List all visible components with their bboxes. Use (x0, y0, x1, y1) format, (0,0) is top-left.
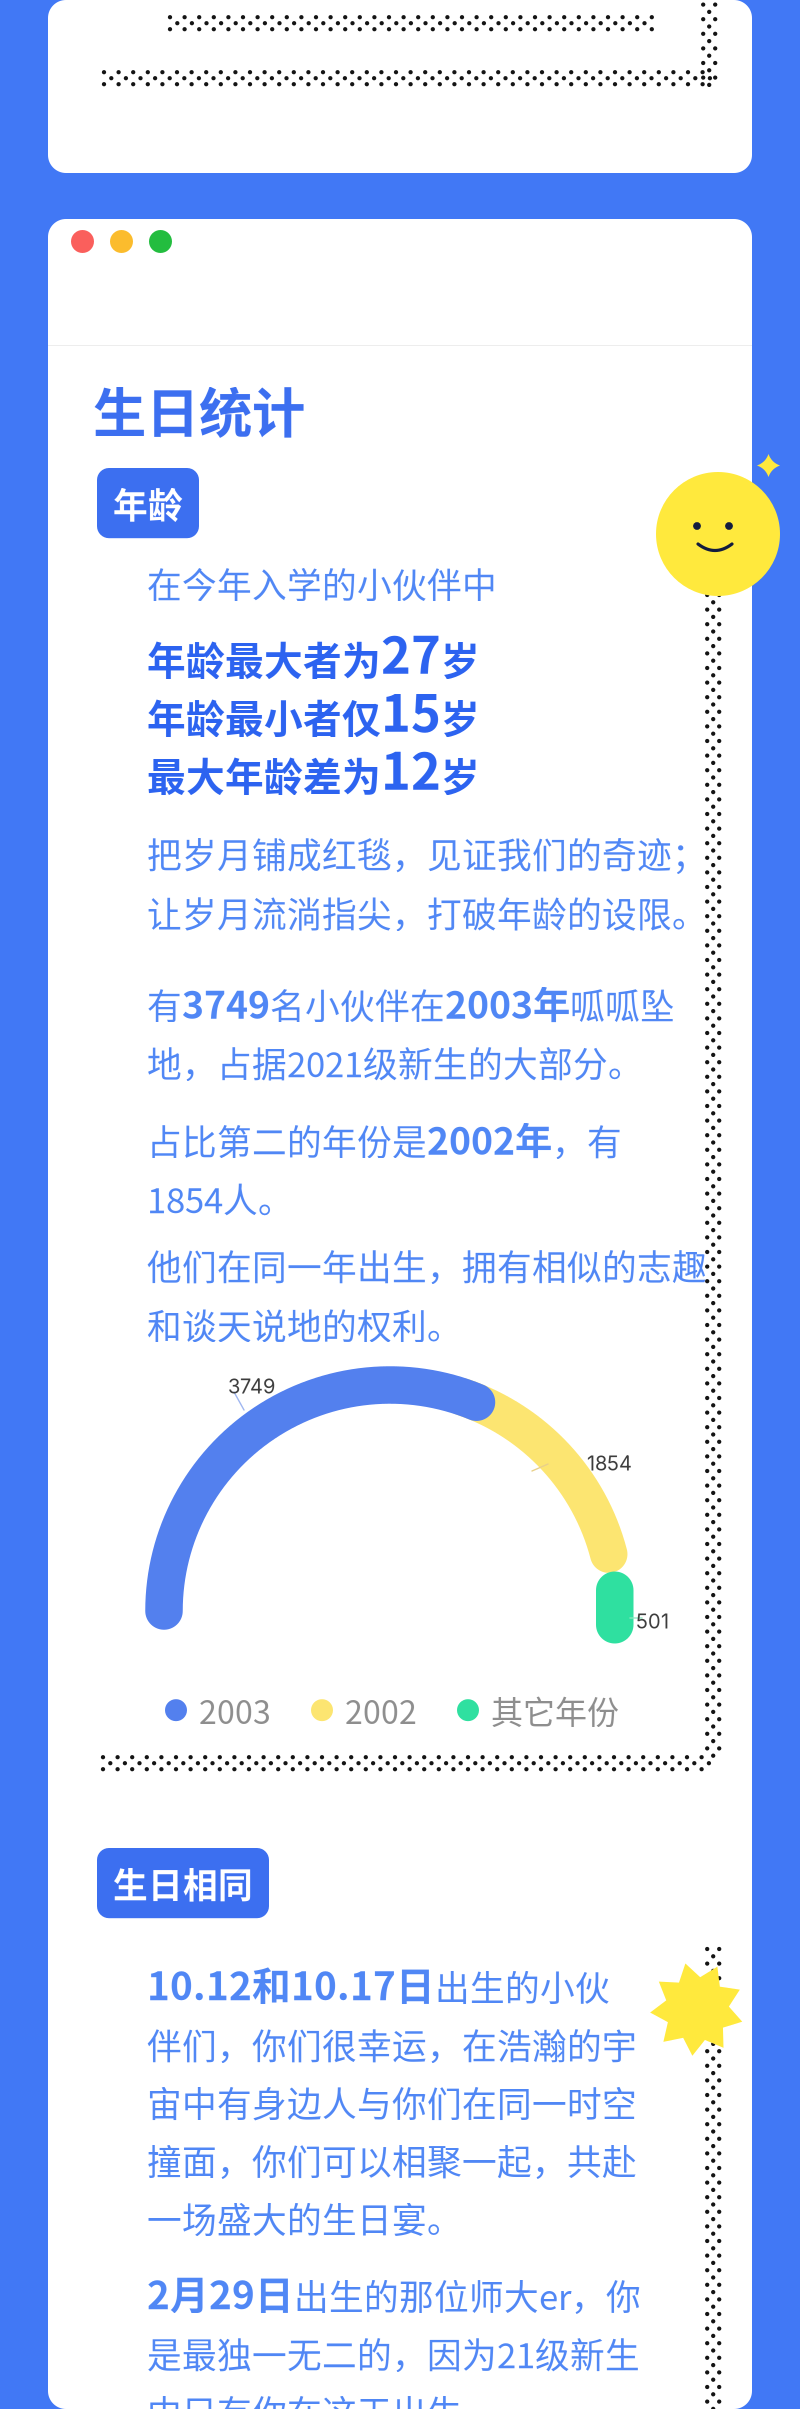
staticText: 他们在同一年出生，拥有相似的志趣和谈天说地的权利。 (147, 1240, 707, 1349)
staticText: 10.12和10.17日出生的小伙伴们，你们很幸运，在浩瀚的宇宙中有身边人与你们… (147, 1956, 637, 2242)
staticText: 生日统计 (93, 371, 305, 448)
staticText: 有3749名小伙伴在2003年呱呱坠地，占据2021级新生的大部分。 (147, 976, 675, 1087)
staticText: 把岁月铺成红毯，见证我们的奇迹； 让岁月流淌指尖，打破年龄的设限。 (147, 828, 707, 937)
staticText: 其它年份 (491, 1687, 619, 1733)
staticText: 年龄最小者仅15岁 (147, 674, 480, 745)
staticText: 占比第二的年份是2002年，有1854人。 (147, 1112, 622, 1223)
staticText: 1854 (587, 1451, 632, 1475)
staticText: 3749 (228, 1374, 275, 1398)
staticText: 2月29日出生的那位师大er，你是最独一无二的，因为21级新生中只有你在这天出生… (147, 2265, 641, 2409)
staticText: 年龄最大者为27岁 (147, 616, 480, 687)
staticText: 最大年龄差为12岁 (147, 732, 480, 803)
staticText: 501 (636, 1609, 669, 1633)
staticText: 2002 (345, 1687, 417, 1733)
staticText: 在今年入学的小伙伴中 (147, 558, 497, 608)
staticText: 2003 (199, 1687, 271, 1733)
staticText: 年龄 (113, 478, 183, 528)
staticText: 生日相同 (113, 1858, 253, 1908)
